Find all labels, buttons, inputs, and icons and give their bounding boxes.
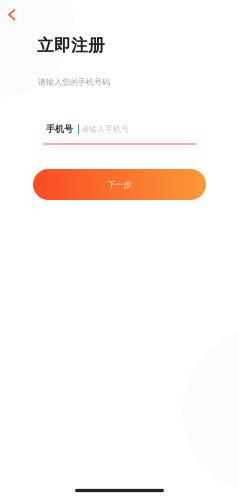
staticText: 下一步: [107, 179, 131, 190]
button[interactable]: 下一步: [33, 169, 206, 200]
staticText: 请输入您的手机号码: [38, 77, 110, 87]
staticText: 请输入手机号: [81, 124, 129, 134]
staticText: 手机号: [46, 123, 73, 135]
staticText: 立即注册: [37, 35, 105, 56]
button[interactable]: Back: [0, 1, 26, 29]
